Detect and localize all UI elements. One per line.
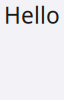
staticText: Hello xyxy=(4,0,60,30)
